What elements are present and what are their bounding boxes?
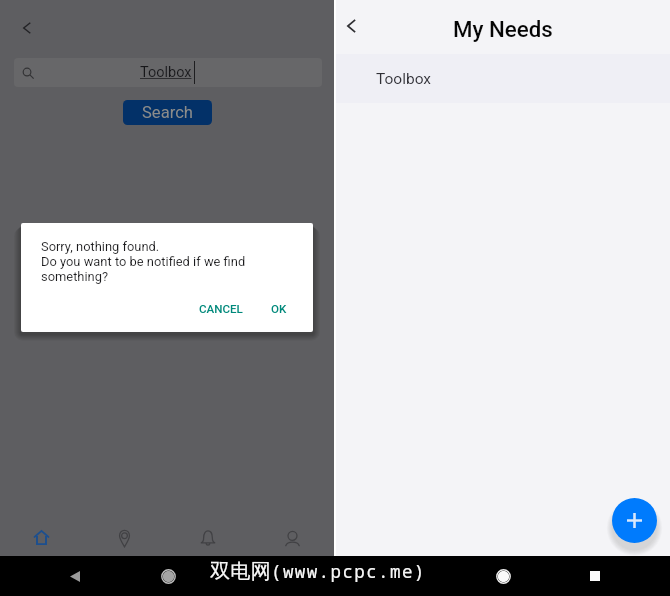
staticText: 双电网: [210, 559, 271, 584]
button[interactable]: Places: [83, 520, 166, 556]
staticText: CANCEL: [199, 302, 243, 316]
button[interactable]: Back: [338, 13, 364, 39]
button[interactable]: Toolbox: [336, 54, 670, 103]
staticText: My Needs: [453, 16, 553, 42]
staticText: Sorry, nothing found. Do you want to be …: [41, 239, 246, 284]
button[interactable]: Home: [153, 561, 183, 591]
staticText: Toolbox: [140, 64, 192, 81]
button[interactable]: Search: [123, 100, 212, 125]
staticText: Toolbox: [376, 70, 432, 88]
button[interactable]: Back: [14, 15, 39, 40]
button[interactable]: Recents: [580, 561, 610, 591]
button[interactable]: Profile: [250, 520, 334, 556]
button[interactable]: Toolbox: [14, 58, 322, 87]
button[interactable]: Home: [0, 520, 83, 556]
button[interactable]: OK: [264, 297, 294, 321]
button[interactable]: Back: [60, 561, 90, 591]
staticText: (www.pcpc.me): [271, 559, 426, 583]
staticText: Search: [142, 103, 193, 122]
button[interactable]: Add: [612, 498, 657, 543]
staticText: OK: [271, 302, 287, 316]
button[interactable]: Notifications: [166, 520, 250, 556]
button[interactable]: Home: [488, 561, 518, 591]
button[interactable]: CANCEL: [192, 297, 250, 321]
